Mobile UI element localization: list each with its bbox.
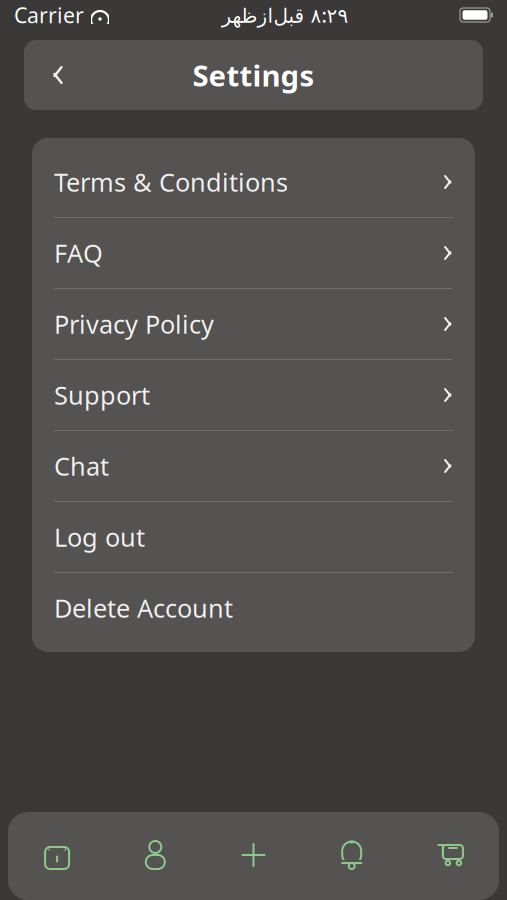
- staticText: Settings: [192, 55, 314, 94]
- staticText: Delete Account: [54, 591, 233, 625]
- staticText: Support: [54, 378, 150, 412]
- button[interactable]: Add: [204, 840, 303, 870]
- button[interactable]: FAQ: [32, 218, 475, 288]
- staticText: FAQ: [54, 236, 103, 270]
- button[interactable]: Support: [32, 360, 475, 430]
- button[interactable]: Cart: [401, 840, 499, 870]
- staticText: Terms & Conditions: [54, 165, 288, 199]
- staticText: Log out: [54, 520, 145, 554]
- button[interactable]: Back: [36, 53, 80, 97]
- staticText: Privacy Policy: [54, 307, 214, 341]
- button[interactable]: Notifications: [303, 840, 401, 870]
- button[interactable]: Delete Account: [32, 573, 475, 643]
- button[interactable]: Terms & Conditions: [32, 147, 475, 217]
- staticText: Chat: [54, 449, 109, 483]
- staticText: ۸:۲۹ قبل‌ازظهر: [221, 2, 348, 28]
- button[interactable]: Home: [8, 840, 106, 870]
- button[interactable]: Chat: [32, 431, 475, 501]
- button[interactable]: Privacy Policy: [32, 289, 475, 359]
- button[interactable]: Log out: [32, 502, 475, 572]
- staticText: Carrier: [14, 1, 84, 29]
- button[interactable]: Profile: [106, 840, 204, 870]
